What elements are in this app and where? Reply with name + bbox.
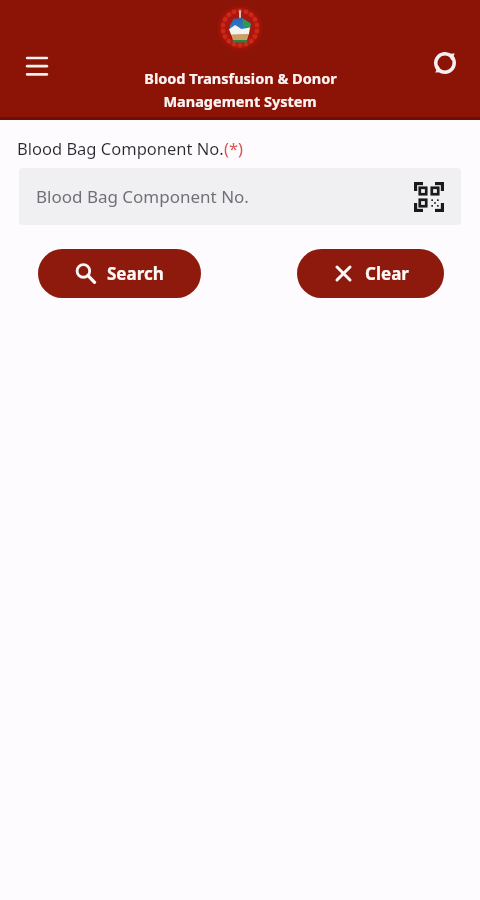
button[interactable]: Open navigation menu <box>14 40 60 86</box>
staticText: (*) <box>224 137 243 159</box>
button[interactable]: Clear <box>297 249 444 298</box>
staticText: Management System <box>163 91 317 111</box>
button[interactable]: Search <box>38 249 201 298</box>
staticText: Blood Transfusion & Donor <box>144 68 337 88</box>
staticText: Search <box>107 262 164 285</box>
button[interactable]: Refresh <box>422 40 468 86</box>
button[interactable]: Scan QR code <box>409 177 449 217</box>
staticText: Clear <box>365 262 409 285</box>
staticText: Blood Bag Component No. <box>36 185 249 208</box>
staticText: Blood Bag Component No. <box>17 137 224 159</box>
button[interactable]: Blood Bag Component No. <box>19 168 461 225</box>
